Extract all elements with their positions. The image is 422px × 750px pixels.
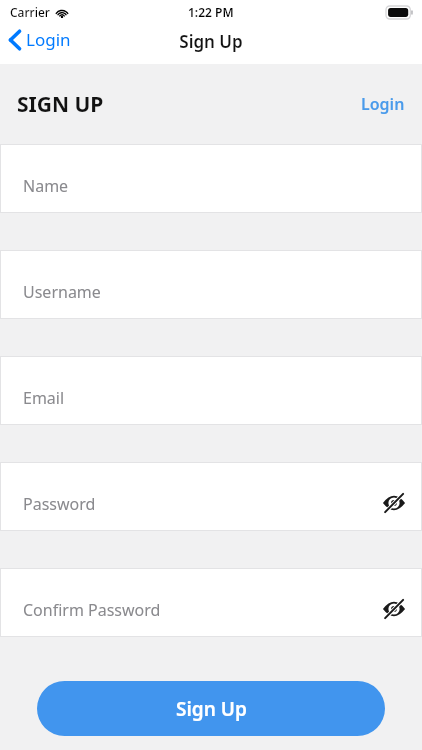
- staticText: 1:22 PM: [188, 4, 234, 20]
- button[interactable]: Password: [0, 462, 422, 531]
- button[interactable]: Show password: [379, 594, 409, 624]
- staticText: Confirm Password: [23, 599, 161, 621]
- button[interactable]: Sign Up: [37, 681, 385, 736]
- button[interactable]: Name: [0, 144, 422, 213]
- button[interactable]: Confirm Password: [0, 568, 422, 637]
- staticText: Sign Up: [179, 30, 243, 53]
- staticText: Login: [26, 28, 71, 51]
- button[interactable]: Username: [0, 250, 422, 319]
- button[interactable]: Email: [0, 356, 422, 425]
- staticText: SIGN UP: [17, 90, 104, 119]
- staticText: Email: [23, 387, 65, 409]
- staticText: Username: [23, 281, 101, 303]
- button[interactable]: Login: [344, 85, 422, 123]
- staticText: Sign Up: [176, 696, 247, 722]
- staticText: Carrier: [10, 4, 50, 20]
- button[interactable]: Show password: [379, 488, 409, 518]
- staticText: Password: [23, 493, 96, 515]
- staticText: Login: [361, 93, 405, 115]
- staticText: Name: [23, 175, 69, 197]
- button[interactable]: Login: [0, 24, 79, 55]
